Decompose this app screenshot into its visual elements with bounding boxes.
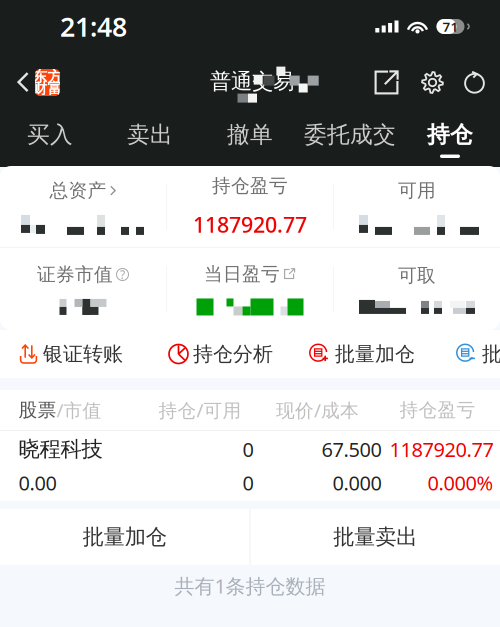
button[interactable]: 刷新	[444, 60, 486, 104]
staticText: 0	[242, 436, 253, 462]
staticText: 卖出	[127, 121, 173, 148]
staticText: 可用	[398, 179, 436, 202]
staticText: 0.000	[332, 469, 381, 496]
staticText: 持仓/可用	[158, 398, 241, 422]
button[interactable]: 买入	[0, 111, 100, 167]
staticText: 当日盈亏	[204, 262, 280, 285]
staticText: ?	[120, 266, 125, 282]
staticText: 财富	[32, 79, 62, 97]
button[interactable]: 晓程科技	[6, 431, 493, 501]
button[interactable]: 持仓分析	[169, 330, 273, 378]
staticText: 批量卖出	[333, 524, 417, 550]
button[interactable]: 批量加仓	[0, 509, 249, 565]
staticText: 批量	[482, 342, 500, 366]
staticText: 0	[242, 469, 253, 496]
button[interactable]: 设置	[399, 61, 444, 104]
staticText: 持仓	[427, 121, 473, 148]
staticText: 71	[442, 18, 458, 35]
button[interactable]: 委托成交	[300, 111, 400, 167]
button[interactable]: 东方财富	[35, 69, 60, 96]
staticText: 21:48	[60, 9, 127, 44]
staticText: 委托成交	[304, 121, 396, 148]
staticText: 总资产	[49, 179, 106, 202]
staticText: 批量加仓	[83, 524, 167, 550]
button[interactable]: 持仓	[400, 111, 500, 167]
staticText: 银证转账	[43, 342, 123, 366]
button[interactable]: 卖出	[100, 111, 200, 167]
button[interactable]: 返回	[11, 63, 35, 101]
button[interactable]: 批量卖出	[250, 509, 500, 565]
staticText: 1187920.77	[389, 436, 493, 462]
staticText: 0.000%	[427, 469, 493, 496]
button[interactable]: 批量	[456, 330, 500, 378]
button[interactable]: 撤单	[200, 111, 300, 167]
staticText: 持仓分析	[193, 342, 273, 366]
staticText: 共有1条持仓数据	[174, 572, 325, 599]
staticText: 持仓盈亏	[212, 174, 288, 197]
staticText: 可取	[398, 264, 436, 287]
button[interactable]: 批量加仓	[309, 330, 415, 378]
staticText: 普通交易	[210, 68, 294, 95]
staticText: 持仓盈亏	[399, 398, 475, 421]
staticText: 撤单	[227, 121, 273, 148]
staticText: 买入	[27, 121, 73, 148]
button[interactable]: 银证转账	[19, 330, 123, 378]
button[interactable]: 分享	[374, 60, 399, 105]
staticText: 东方	[32, 67, 62, 85]
staticText: 1187920.77	[193, 210, 307, 239]
staticText: 现价/成本	[276, 398, 359, 422]
staticText: /市值	[56, 398, 101, 422]
staticText: 0.00	[18, 469, 56, 496]
staticText: 证券市值	[37, 263, 113, 286]
staticText: 股票	[18, 398, 56, 421]
staticText: 批量加仓	[335, 342, 415, 366]
staticText: 67.500	[321, 436, 381, 462]
staticText: 晓程科技	[18, 436, 102, 462]
